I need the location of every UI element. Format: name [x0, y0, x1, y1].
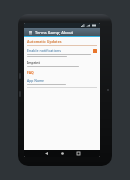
button[interactable]: Enable notifications checkbox	[93, 49, 97, 53]
button[interactable]: Back	[43, 150, 50, 157]
button[interactable]: FAQ	[27, 70, 34, 75]
staticText: Terms &amp; About	[35, 30, 73, 35]
staticText: Automatic Updates	[27, 39, 62, 44]
staticText: Imprint	[27, 60, 40, 65]
button[interactable]: Recent apps	[75, 150, 82, 157]
button[interactable]: Navigate up	[27, 29, 33, 35]
staticText: Enable notifications	[27, 48, 61, 53]
button[interactable]: Enable notifications	[27, 48, 97, 57]
staticText: App Name	[27, 78, 45, 83]
button[interactable]: Home	[59, 150, 66, 157]
